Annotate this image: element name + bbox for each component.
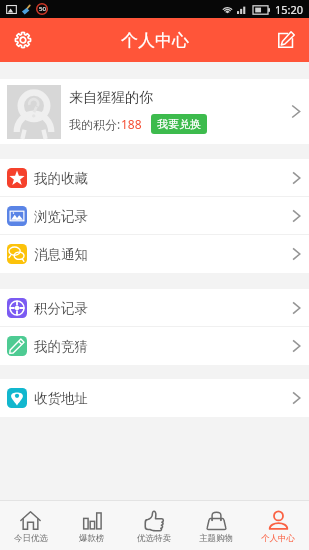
staticText: 收货地址 xyxy=(34,390,88,407)
staticText: 浏览记录 xyxy=(34,208,88,225)
button[interactable]: 我的竞猜 xyxy=(0,327,309,365)
button[interactable]: 主题购物 xyxy=(185,501,247,550)
staticText: 主题购物 xyxy=(199,533,233,544)
button[interactable]: 消息通知 xyxy=(0,235,309,273)
staticText: 我的收藏 xyxy=(34,170,88,187)
staticText: 积分记录 xyxy=(34,300,88,317)
staticText: 来自猩猩的你 xyxy=(69,89,153,107)
button[interactable]: 我要兑换 xyxy=(151,114,207,134)
staticText: 我的积分: xyxy=(69,116,121,132)
staticText: 15:20 xyxy=(275,2,304,17)
button[interactable]: 我的收藏 xyxy=(0,159,309,197)
button[interactable]: Edit profile xyxy=(269,23,303,57)
staticText: 消息通知 xyxy=(34,246,88,263)
button[interactable]: 浏览记录 xyxy=(0,197,309,235)
button[interactable]: 优选特卖 xyxy=(123,501,185,550)
staticText: 爆款榜 xyxy=(79,533,105,544)
button[interactable]: 个人中心 xyxy=(247,501,309,550)
staticText: 今日优选 xyxy=(14,533,48,544)
staticText: 50 xyxy=(39,5,46,13)
button[interactable]: 爆款榜 xyxy=(61,501,123,550)
staticText: 我要兑换 xyxy=(157,117,201,131)
staticText: 优选特卖 xyxy=(137,533,171,544)
staticText: 我的竞猜 xyxy=(34,338,88,355)
button[interactable]: 收货地址 xyxy=(0,379,309,417)
staticText: 个人中心 xyxy=(121,30,189,51)
button[interactable]: 今日优选 xyxy=(0,501,61,550)
button[interactable]: 来自猩猩的你 xyxy=(0,79,309,144)
button[interactable]: Settings xyxy=(6,23,40,57)
button[interactable]: 积分记录 xyxy=(0,289,309,327)
staticText: 188 xyxy=(121,116,142,132)
staticText: 个人中心 xyxy=(261,533,295,544)
